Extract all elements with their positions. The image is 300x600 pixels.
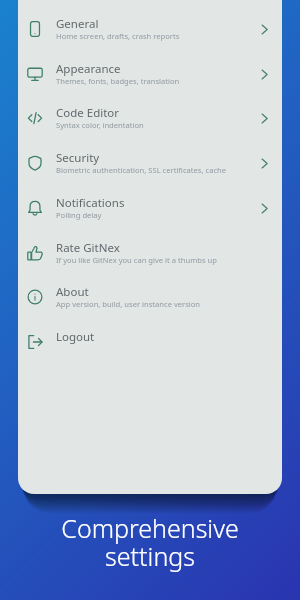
button[interactable]: Notifications bbox=[18, 185, 282, 230]
staticText: About bbox=[56, 284, 89, 300]
staticText: If you like GitNex you can give it a thu… bbox=[56, 255, 217, 265]
button[interactable]: Code Editor bbox=[18, 95, 282, 140]
button[interactable]: General bbox=[18, 6, 282, 51]
staticText: Syntax color, indentation bbox=[56, 120, 144, 130]
staticText: Notifications bbox=[56, 195, 125, 211]
staticText: Appearance bbox=[56, 61, 121, 77]
staticText: Polling delay bbox=[56, 210, 102, 220]
staticText: Code Editor bbox=[56, 105, 120, 121]
button[interactable]: Logout bbox=[18, 319, 282, 364]
staticText: General bbox=[56, 16, 99, 32]
staticText: App version, build, user instance versio… bbox=[56, 299, 201, 309]
staticText: Security bbox=[56, 150, 100, 166]
staticText: Logout bbox=[56, 329, 95, 345]
button[interactable]: About bbox=[18, 274, 282, 319]
staticText: Rate GitNex bbox=[56, 240, 120, 256]
staticText: Comprehensive settings bbox=[61, 511, 239, 573]
button[interactable]: Rate GitNex bbox=[18, 230, 282, 275]
staticText: Home screen, drafts, crash reports bbox=[56, 31, 180, 41]
button[interactable]: Security bbox=[18, 140, 282, 185]
button[interactable]: Appearance bbox=[18, 51, 282, 96]
staticText: Biometric authentication, SSL certificat… bbox=[56, 165, 227, 175]
staticText: Themes, fonts, badges, translation bbox=[56, 76, 180, 86]
